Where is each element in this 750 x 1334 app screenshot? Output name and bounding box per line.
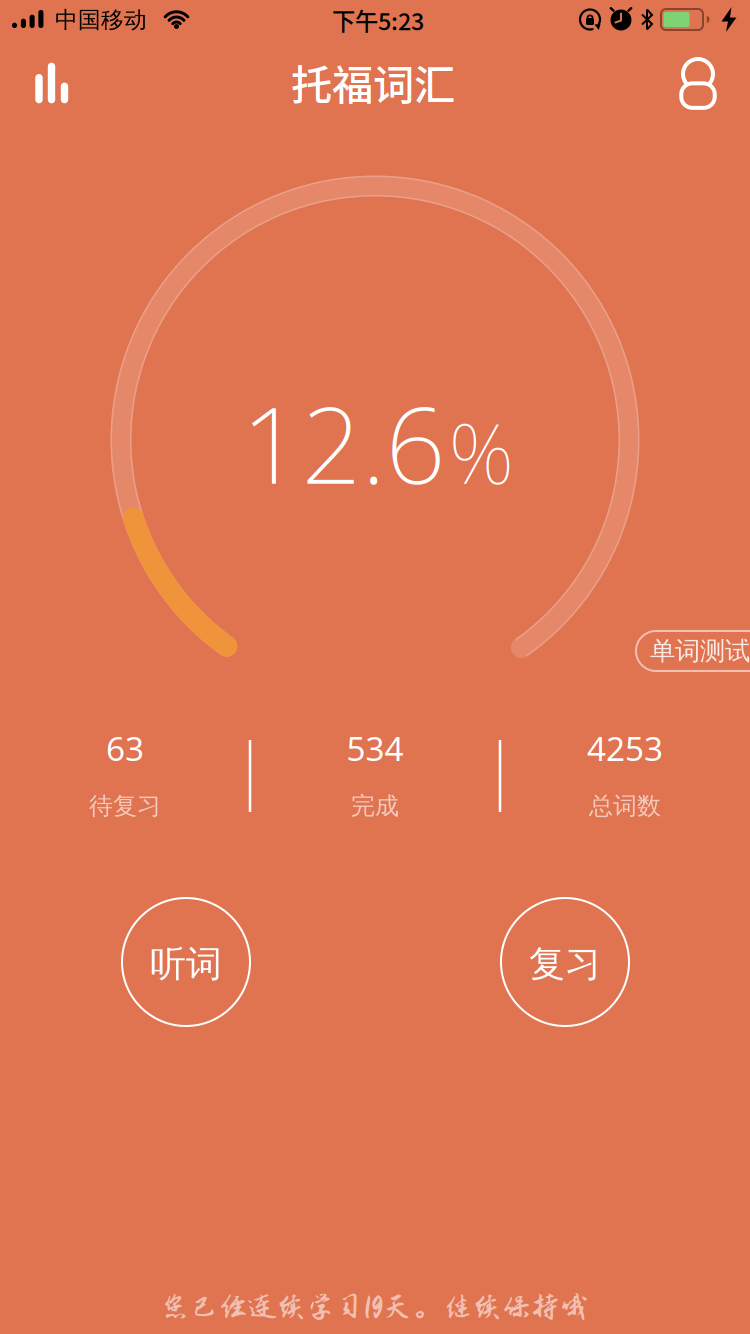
- staticText: %: [448, 397, 514, 507]
- staticText: 单词测试: [650, 635, 750, 666]
- staticText: 托福词汇: [291, 52, 455, 112]
- staticText: 中国移动: [55, 6, 147, 34]
- button[interactable]: 学习统计: [19, 51, 83, 115]
- staticText: 534: [346, 726, 403, 770]
- button[interactable]: 听词: [122, 898, 250, 1026]
- staticText: 下午5:23: [332, 3, 424, 37]
- button[interactable]: 复习: [501, 898, 629, 1026]
- staticText: 63: [106, 726, 144, 770]
- staticText: 总词数: [589, 791, 661, 821]
- staticText: 听词: [150, 942, 222, 986]
- staticText: 完成: [351, 791, 399, 821]
- button[interactable]: 单词测试: [636, 631, 750, 671]
- staticText: 12.6: [241, 373, 445, 513]
- button[interactable]: 我的: [660, 40, 736, 126]
- staticText: 您已经连续学习19天。继续保持哦: [161, 1291, 589, 1323]
- staticText: 复习: [529, 942, 601, 986]
- staticText: 待复习: [89, 791, 161, 821]
- staticText: 4253: [587, 726, 663, 770]
